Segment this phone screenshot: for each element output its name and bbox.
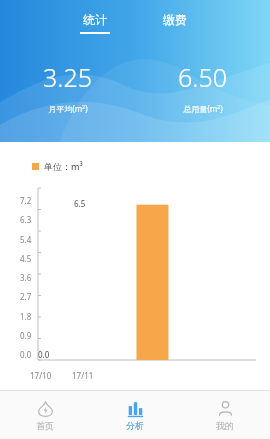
staticText: 6.5	[74, 198, 86, 209]
staticText: 1.8	[20, 311, 32, 322]
staticText: 2.7	[20, 291, 32, 302]
staticText: 3.6	[20, 272, 32, 283]
staticText: 统计	[83, 12, 107, 27]
staticText: 0.0	[20, 349, 32, 360]
staticText: 4.5	[20, 253, 32, 264]
staticText: 17/11	[72, 370, 94, 381]
button[interactable]: 单位：m³	[32, 160, 83, 172]
button[interactable]: 缴费	[150, 10, 200, 36]
staticText: 3.25	[43, 60, 92, 94]
staticText: 5.4	[20, 234, 32, 245]
staticText: 首页	[36, 420, 54, 431]
staticText: 月平均(m²)	[48, 103, 88, 114]
staticText: 分析	[126, 420, 144, 431]
button[interactable]: 首页	[0, 391, 90, 439]
staticText: 总用量(m²)	[183, 103, 223, 114]
staticText: 7.2	[20, 195, 32, 206]
staticText: 我的	[216, 420, 234, 431]
staticText: 6.50	[178, 60, 227, 94]
button[interactable]: 统计	[70, 10, 120, 36]
button[interactable]: 分析	[90, 391, 180, 439]
staticText: 17/10	[30, 370, 52, 381]
button[interactable]: 我的	[180, 391, 270, 439]
staticText: 缴费	[163, 12, 187, 27]
staticText: 0.9	[20, 330, 32, 341]
staticText: 0.0	[38, 349, 50, 360]
staticText: 6.3	[20, 214, 32, 225]
staticText: 单位：m³	[44, 160, 83, 172]
